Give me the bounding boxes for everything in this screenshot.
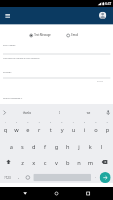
staticText: 8	[84, 121, 85, 124]
button[interactable]: Select Message *	[3, 96, 113, 105]
button[interactable]: Back	[19, 187, 32, 200]
staticText: Full Name*	[3, 43, 16, 47]
staticText: o	[94, 126, 98, 134]
staticText: q	[4, 126, 7, 134]
button[interactable]: z	[17, 154, 28, 169]
staticText: d	[32, 143, 36, 151]
button[interactable]: a	[6, 138, 17, 153]
button[interactable]: j	[73, 138, 85, 153]
staticText: we	[87, 111, 90, 114]
staticText: 7	[73, 121, 74, 124]
button[interactable]: n	[73, 154, 85, 169]
button[interactable]: l	[96, 138, 107, 153]
staticText: w	[14, 126, 19, 134]
staticText: n	[77, 159, 81, 167]
staticText: I	[59, 111, 60, 114]
button[interactable]: f	[39, 138, 51, 153]
button[interactable]: Emoji	[22, 170, 33, 185]
staticText: ?123	[4, 176, 11, 180]
staticText: y	[61, 126, 64, 134]
button[interactable]: 2	[11, 121, 22, 136]
button[interactable]: Backspace	[96, 154, 113, 169]
staticText: t	[50, 126, 52, 134]
staticText: 6	[61, 121, 63, 124]
staticText: g	[55, 143, 58, 151]
button[interactable]: 4	[34, 121, 45, 136]
button[interactable]: Full Name*	[3, 43, 113, 52]
staticText: z	[21, 159, 24, 167]
staticText: .	[95, 174, 96, 180]
staticText: ,	[18, 174, 19, 180]
staticText: k	[89, 143, 92, 151]
button[interactable]: Voice input	[103, 104, 113, 121]
staticText: 5	[50, 121, 51, 124]
staticText: b	[66, 159, 70, 167]
button[interactable]: 0	[102, 121, 113, 136]
button[interactable]: Shift	[0, 154, 17, 169]
staticText: x	[32, 159, 35, 167]
button[interactable]: ,	[15, 170, 22, 185]
button[interactable]: 7	[68, 121, 79, 136]
button[interactable]: c	[39, 154, 51, 169]
staticText: 9	[95, 121, 97, 124]
staticText: v	[55, 159, 58, 167]
button[interactable]: 8	[79, 121, 90, 136]
button[interactable]: b	[62, 154, 73, 169]
button[interactable]: 1	[0, 121, 11, 136]
button[interactable]: thanks	[9, 104, 45, 121]
staticText: 6:37	[105, 2, 111, 6]
staticText: Text Message	[34, 34, 51, 37]
staticText: u	[72, 126, 75, 134]
button[interactable]: Recent apps	[82, 187, 95, 200]
staticText: Email	[71, 34, 78, 37]
staticText: e	[26, 126, 30, 134]
staticText: Select Message *	[3, 96, 22, 99]
button[interactable]: we	[74, 104, 103, 121]
button[interactable]: Home	[50, 187, 63, 200]
button[interactable]: .	[91, 170, 100, 185]
staticText: i	[84, 126, 86, 134]
staticText: a	[10, 143, 13, 151]
button[interactable]: d	[28, 138, 39, 153]
button[interactable]: v	[51, 154, 62, 169]
button[interactable]: x	[28, 154, 39, 169]
staticText: c	[44, 159, 47, 167]
button[interactable]: More suggestions	[0, 104, 9, 121]
staticText: f	[44, 143, 46, 151]
staticText: s	[21, 143, 24, 151]
staticText: j	[78, 143, 80, 151]
button[interactable]: 3	[22, 121, 34, 136]
button[interactable]: Account	[99, 12, 106, 19]
staticText: 3	[27, 121, 29, 124]
staticText: l	[101, 143, 103, 151]
button[interactable]: 6	[56, 121, 68, 136]
button[interactable]: h	[62, 138, 73, 153]
staticText: r	[38, 126, 41, 134]
staticText: 0	[107, 121, 108, 124]
button[interactable]: Email	[66, 34, 78, 37]
staticText: Phone*	[3, 70, 12, 73]
button[interactable]: k	[85, 138, 96, 153]
button[interactable]: Text Message	[29, 34, 51, 37]
staticText: 2	[16, 121, 17, 124]
staticText: This field can handle all your contents	[3, 57, 40, 60]
staticText: m	[88, 159, 93, 167]
staticText: thanks	[23, 111, 31, 114]
button[interactable]: Enter	[100, 172, 111, 183]
staticText: 4	[39, 121, 40, 124]
staticText: 0 / 10	[97, 80, 103, 82]
staticText: h	[66, 143, 70, 151]
button[interactable]: m	[85, 154, 96, 169]
button[interactable]: ?123	[0, 170, 15, 185]
staticText: p	[106, 126, 109, 134]
button[interactable]: Phone*	[3, 70, 113, 79]
button[interactable]: s	[17, 138, 28, 153]
button[interactable]: g	[51, 138, 62, 153]
button[interactable]: Open navigation menu	[2, 11, 13, 21]
staticText: 1	[5, 121, 6, 124]
button[interactable]: 9	[90, 121, 102, 136]
button[interactable]: 5	[45, 121, 56, 136]
button[interactable]: I	[45, 104, 74, 121]
